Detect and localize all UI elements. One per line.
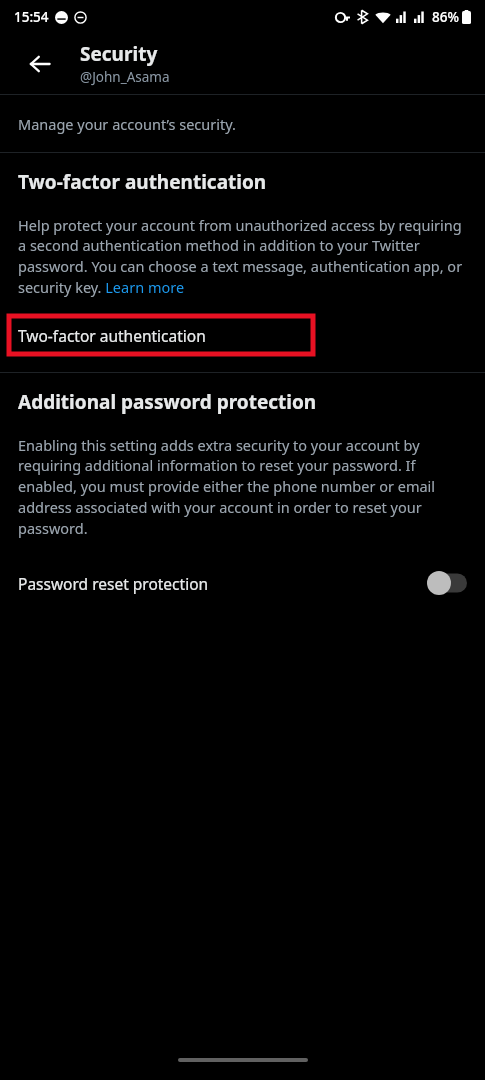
button[interactable]: Two-factor authentication [9, 316, 313, 354]
staticText: 86% [432, 8, 459, 26]
staticText: Security [80, 41, 158, 67]
staticText: @John_Asama [80, 68, 170, 86]
staticText: 15:54 [14, 8, 49, 26]
staticText: Manage your account’s security. [18, 114, 236, 134]
button[interactable]: Password reset protection toggle [427, 571, 467, 595]
staticText: Enabling this setting adds extra securit… [18, 435, 467, 539]
staticText: Additional password protection [18, 389, 317, 415]
staticText: Help protect your account from unauthori… [18, 215, 467, 298]
staticText: Password reset protection [18, 573, 427, 594]
button[interactable]: Password reset protection [0, 561, 485, 605]
button[interactable]: Back [0, 34, 80, 94]
staticText: Two-factor authentication [18, 325, 206, 346]
staticText: Two-factor authentication [18, 169, 267, 195]
